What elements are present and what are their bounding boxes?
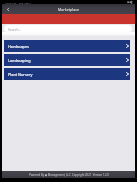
- button[interactable]: Search...: [4, 25, 132, 32]
- button[interactable]: Hardscapes: [4, 40, 130, 52]
- button[interactable]: Landscaping: [4, 54, 130, 66]
- staticText: Hardscapes: [8, 44, 29, 49]
- button[interactable]: Back: [2, 4, 14, 14]
- staticText: Marketplace: [58, 7, 79, 12]
- staticText: Tue, Sep 7: [19, 1, 31, 4]
- staticText: Landscaping: [8, 58, 31, 63]
- staticText: 10:42 AM: [5, 1, 16, 4]
- staticText: Powered By ● Management, LLC Copyright 2…: [29, 173, 109, 177]
- staticText: Plant Nursery: [8, 72, 33, 77]
- staticText: ●●▌: [127, 1, 134, 4]
- button[interactable]: Plant Nursery: [4, 68, 130, 80]
- staticText: Search...: [8, 27, 22, 31]
